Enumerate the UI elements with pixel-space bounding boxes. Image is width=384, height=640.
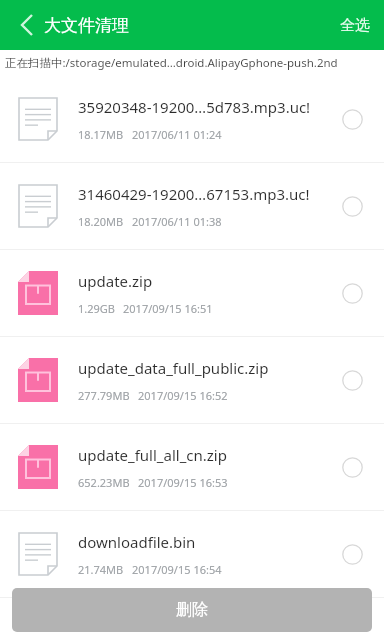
staticText: 21.74MB bbox=[78, 562, 124, 577]
staticText: 大文件清理 bbox=[44, 15, 129, 36]
button[interactable]: Select bbox=[330, 532, 374, 576]
staticText: 正在扫描中:/storage/emulated…droid.AlipayGpho… bbox=[5, 55, 384, 71]
button[interactable]: update.zip bbox=[0, 250, 384, 336]
staticText: update.zip bbox=[78, 271, 153, 291]
staticText: 2017/06/11 01:24 bbox=[132, 127, 222, 142]
button[interactable]: update_data_full_public.zip bbox=[0, 337, 384, 423]
staticText: 18.17MB bbox=[78, 127, 124, 142]
button[interactable]: 删除 bbox=[12, 588, 372, 632]
staticText: 31460429-19200…67153.mp3.uc! bbox=[78, 184, 310, 204]
button[interactable]: 全选 bbox=[326, 6, 384, 45]
staticText: 1.29GB bbox=[78, 301, 115, 316]
staticText: 2017/09/15 16:54 bbox=[132, 562, 222, 577]
button[interactable]: update_full_all_cn.zip bbox=[0, 424, 384, 510]
staticText: 277.79MB bbox=[78, 388, 130, 403]
button[interactable]: Select bbox=[330, 445, 374, 489]
button[interactable]: Select bbox=[330, 184, 374, 228]
button[interactable]: downloadfile.bin bbox=[0, 511, 384, 597]
staticText: 18.20MB bbox=[78, 214, 124, 229]
button[interactable]: 31460429-19200…67153.mp3.uc! bbox=[0, 163, 384, 249]
staticText: 全选 bbox=[340, 16, 370, 35]
button[interactable]: Select bbox=[330, 358, 374, 402]
staticText: 删除 bbox=[176, 600, 208, 620]
staticText: 2017/06/11 01:38 bbox=[132, 214, 222, 229]
staticText: 2017/09/15 16:53 bbox=[138, 475, 228, 490]
staticText: update_full_all_cn.zip bbox=[78, 445, 227, 465]
staticText: 2017/09/15 16:51 bbox=[123, 301, 213, 316]
button[interactable]: Select bbox=[330, 97, 374, 141]
staticText: update_data_full_public.zip bbox=[78, 358, 269, 378]
staticText: downloadfile.bin bbox=[78, 532, 196, 552]
button[interactable]: 35920348-19200…5d783.mp3.uc! bbox=[0, 76, 384, 162]
staticText: 35920348-19200…5d783.mp3.uc! bbox=[78, 97, 311, 117]
staticText: 652.23MB bbox=[78, 475, 130, 490]
button[interactable]: Back bbox=[10, 8, 44, 42]
button[interactable]: Select bbox=[330, 271, 374, 315]
staticText: 2017/09/15 16:52 bbox=[138, 388, 228, 403]
